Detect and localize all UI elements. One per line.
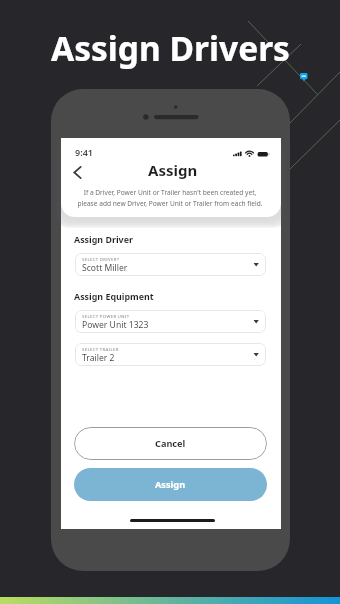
button[interactable]: Back	[66, 161, 89, 184]
button[interactable]: Assign	[74, 468, 267, 501]
button[interactable]: SELECT TRAILER	[75, 343, 266, 366]
staticText: SELECT TRAILER	[82, 346, 119, 352]
button[interactable]: Cancel	[74, 427, 267, 460]
staticText: Power Unit 1323	[82, 319, 149, 331]
staticText: Assign Driver	[74, 233, 133, 245]
staticText: Cancel	[155, 437, 186, 450]
staticText: Assign Equipment	[74, 290, 154, 302]
staticText: Assign	[155, 478, 186, 491]
staticText: Assign Drivers	[51, 25, 290, 71]
staticText: SELECT DRIVER*	[82, 256, 120, 262]
staticText: Scott Miller	[82, 262, 128, 274]
button[interactable]: SELECT DRIVER*	[75, 253, 266, 276]
staticText: 9:41	[75, 146, 93, 158]
staticText: Trailer 2	[82, 352, 115, 364]
staticText: Assign	[148, 160, 198, 180]
staticText: SELECT POWER UNIT	[82, 313, 130, 319]
staticText: If a Driver, Power Unit or Trailer hasn'…	[60, 188, 280, 208]
button[interactable]: SELECT POWER UNIT	[75, 310, 266, 333]
